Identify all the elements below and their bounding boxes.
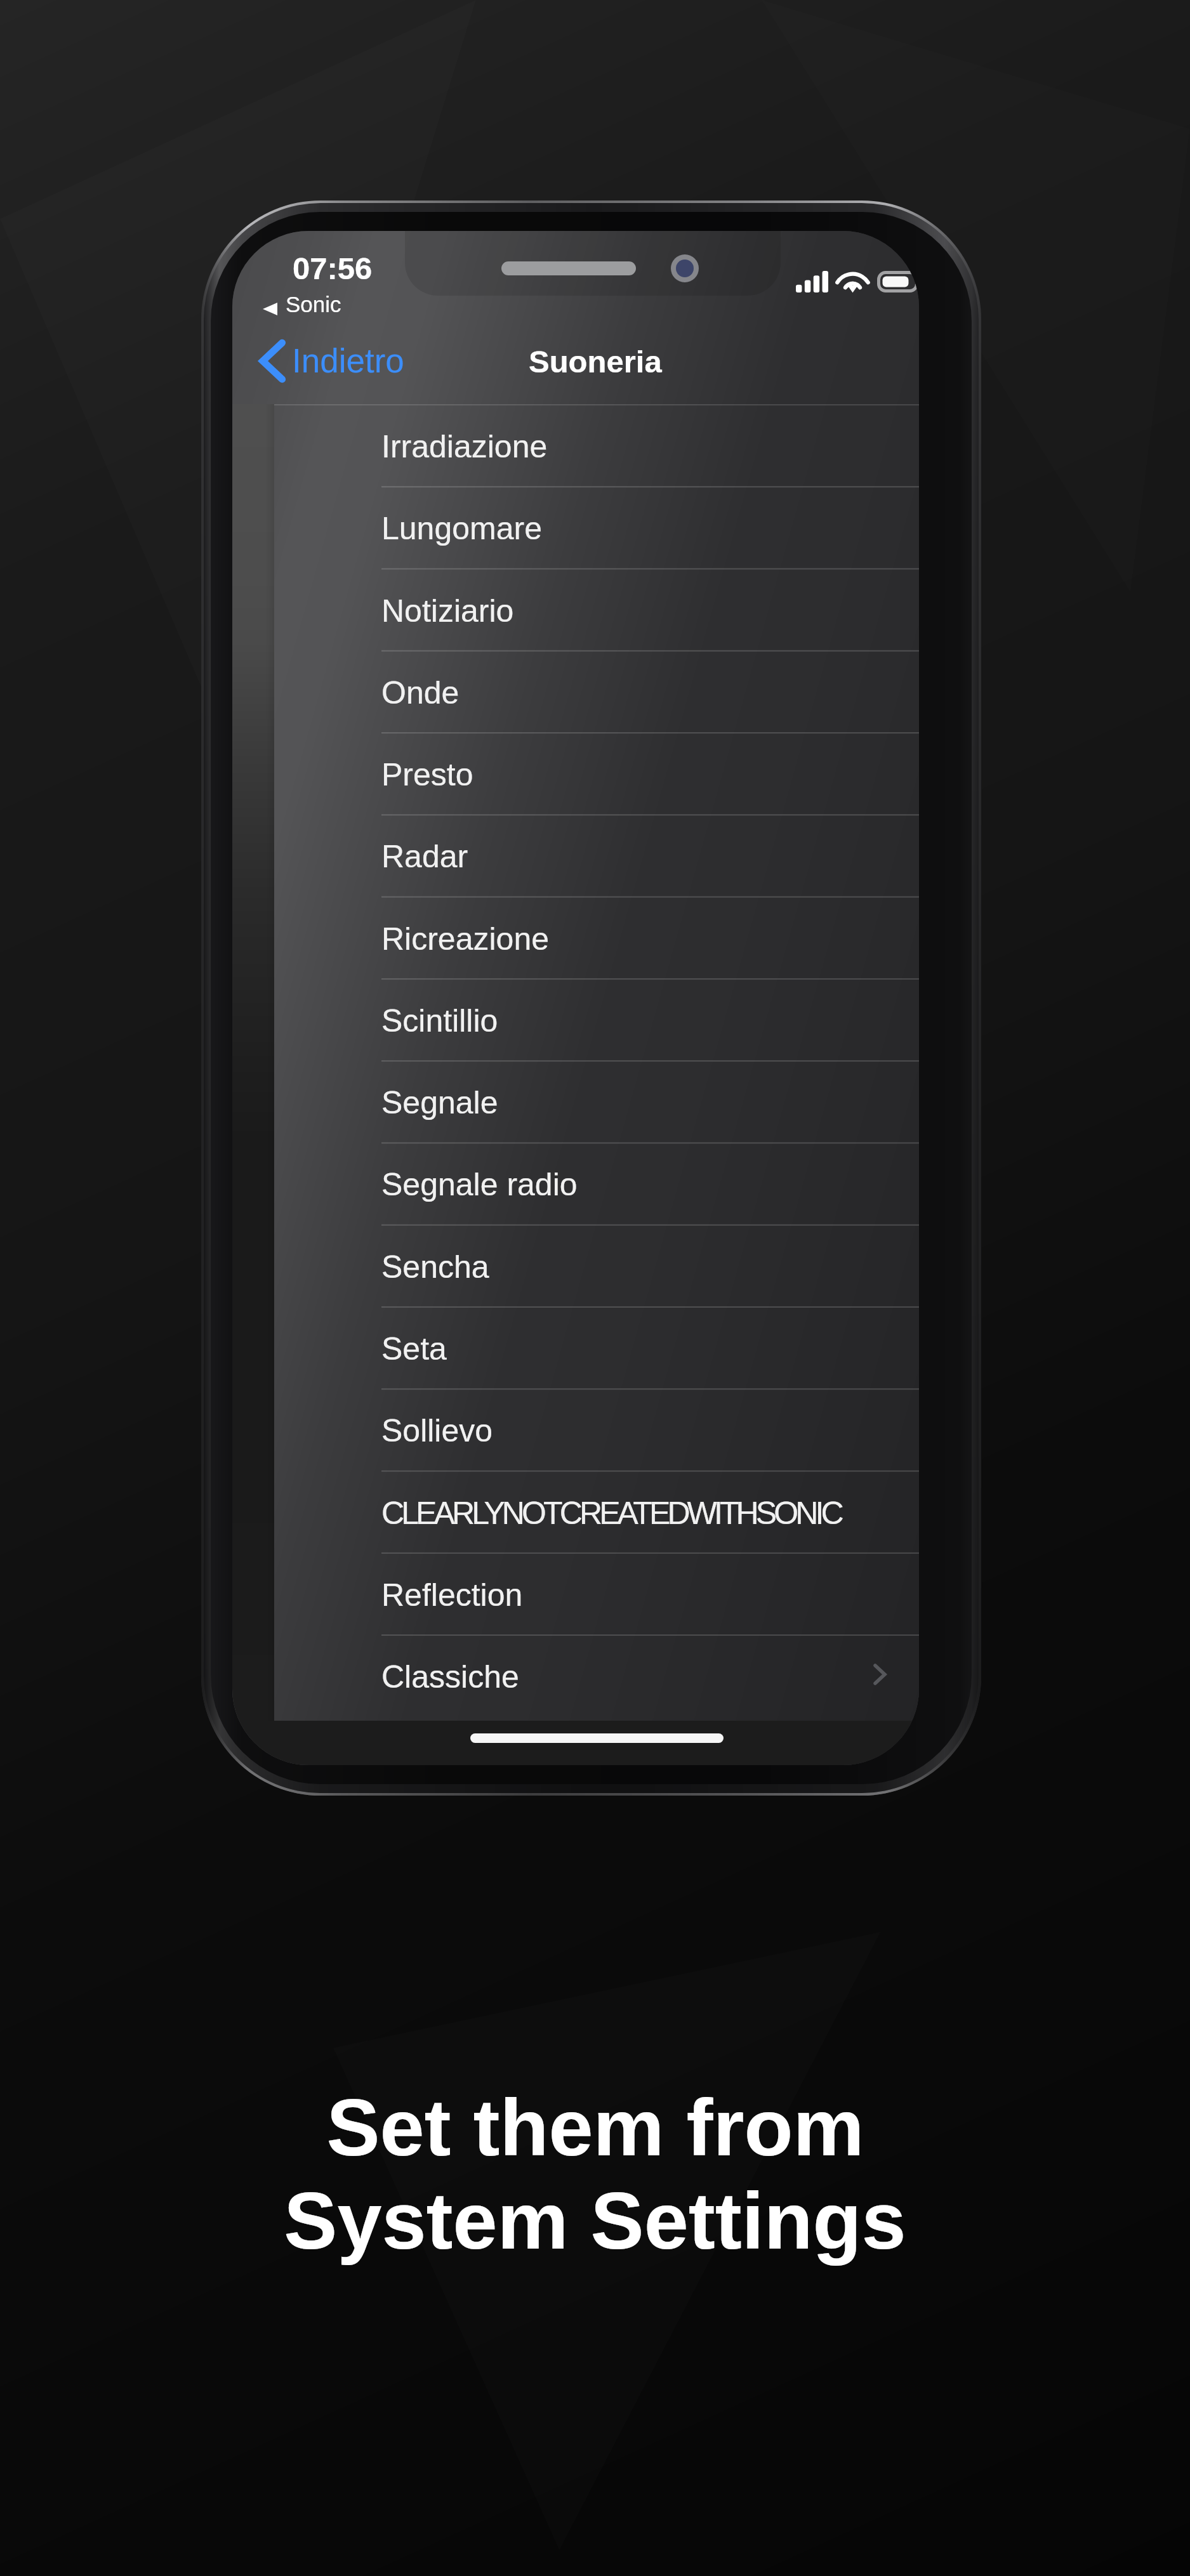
staticText: Presto	[381, 757, 473, 792]
staticText: 07:56	[293, 251, 373, 286]
button[interactable]: Presto	[274, 732, 919, 814]
staticText: Onde	[381, 675, 459, 711]
button[interactable]: Notiziario	[274, 568, 919, 650]
button[interactable]: Classiche	[274, 1634, 919, 1716]
staticText: Segnale radio	[381, 1167, 578, 1202]
button[interactable]: Reflection	[274, 1553, 919, 1634]
other: Open Classiche	[873, 1664, 887, 1685]
button[interactable]: Ricreazione	[274, 897, 919, 978]
button[interactable]: Segnale	[274, 1060, 919, 1142]
button[interactable]: CLEARLYNOTCREATEDWITHSONIC	[274, 1471, 919, 1553]
button[interactable]: Sencha	[274, 1225, 919, 1306]
button[interactable]: Scintillio	[274, 978, 919, 1060]
button[interactable]: Indietro	[257, 338, 404, 384]
staticText: Sencha	[381, 1249, 489, 1285]
button[interactable]: Lungomare	[274, 486, 919, 568]
button[interactable]: Sollievo	[274, 1388, 919, 1470]
staticText: Radar	[381, 839, 468, 874]
staticText: Lungomare	[381, 511, 542, 546]
staticText: Scintillio	[381, 1003, 498, 1039]
staticText: Set them from	[326, 2083, 864, 2172]
staticText: Reflection	[381, 1577, 523, 1613]
staticText: Suoneria	[529, 345, 662, 379]
button[interactable]: Onde	[274, 650, 919, 732]
staticText: Segnale	[381, 1085, 498, 1120]
staticText: CLEARLYNOTCREATEDWITHSONIC	[381, 1495, 841, 1531]
button[interactable]: Sonic	[263, 296, 341, 321]
staticText: Irradiazione	[381, 429, 548, 464]
staticText: Ricreazione	[381, 921, 550, 957]
staticText: Classiche	[381, 1659, 519, 1695]
staticText: Sonic	[286, 292, 341, 317]
staticText: Sollievo	[381, 1413, 493, 1449]
button[interactable]: Seta	[274, 1306, 919, 1388]
button[interactable]: Segnale radio	[274, 1142, 919, 1224]
staticText: Seta	[381, 1331, 447, 1367]
staticText: System Settings	[284, 2176, 906, 2266]
button[interactable]: Radar	[274, 814, 919, 896]
staticText: Indietro	[292, 342, 404, 379]
staticText: Notiziario	[381, 593, 514, 629]
button[interactable]: Irradiazione	[274, 404, 919, 486]
